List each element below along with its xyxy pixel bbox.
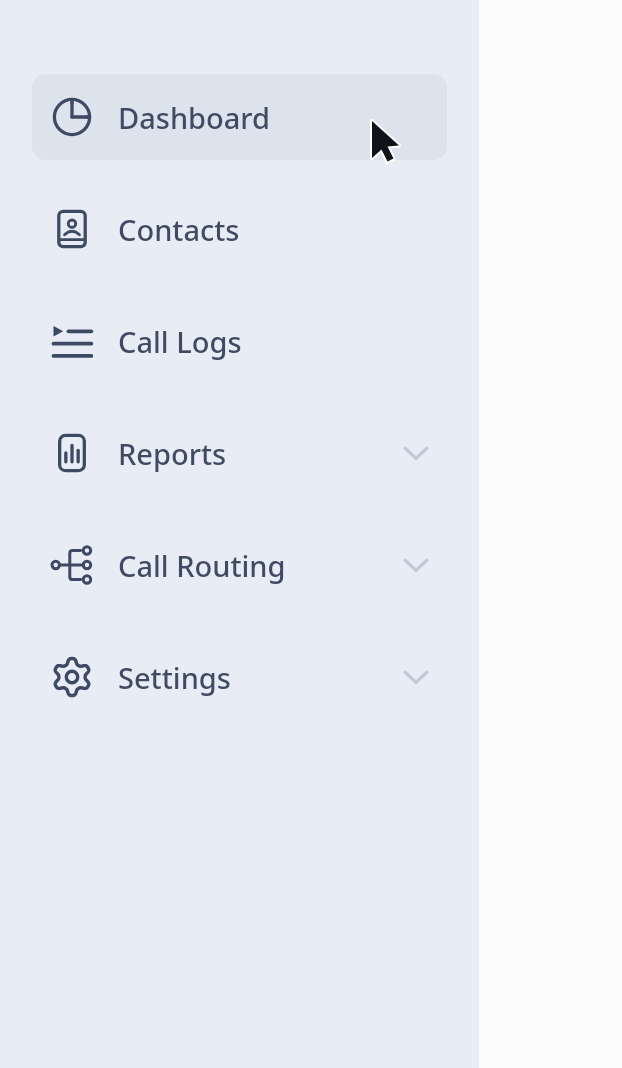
staticText: Settings: [118, 658, 231, 697]
button[interactable]: Call Logs: [32, 298, 447, 384]
other: Call Routing: [50, 543, 94, 587]
other: Contacts: [50, 207, 94, 251]
staticText: Reports: [118, 434, 227, 473]
staticText: Call Logs: [118, 322, 242, 361]
button[interactable]: Dashboard: [32, 74, 447, 160]
button[interactable]: Reports: [32, 410, 447, 496]
staticText: Dashboard: [118, 98, 271, 137]
other: Reports: [50, 431, 94, 475]
button[interactable]: Call Routing: [32, 522, 447, 608]
staticText: Call Routing: [118, 546, 286, 585]
other: Dashboard: [50, 95, 94, 139]
other: Call Logs: [50, 319, 94, 363]
staticText: Contacts: [118, 210, 240, 249]
other: Settings: [50, 655, 94, 699]
button[interactable]: Contacts: [32, 186, 447, 272]
button[interactable]: Settings: [32, 634, 447, 720]
